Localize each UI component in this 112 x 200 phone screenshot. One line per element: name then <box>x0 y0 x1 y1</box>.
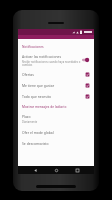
button[interactable]: Activar las notificaciones <box>81 57 90 63</box>
button[interactable]: Se descomovisto <box>18 138 94 149</box>
staticText: Todo que necesito <box>22 94 52 99</box>
staticText: Ofertas <box>22 72 34 77</box>
button[interactable]: Home <box>52 166 60 174</box>
button[interactable]: Activado <box>85 94 90 99</box>
button[interactable]: Activado <box>85 83 90 88</box>
staticText: Diariamente <box>22 120 38 124</box>
staticText: Mostrar mensajes de ladiario <box>22 105 67 109</box>
button[interactable]: Ofer el mode global <box>18 127 94 138</box>
staticText: Notificaciones <box>22 45 44 49</box>
button[interactable]: Ofertas <box>18 69 94 80</box>
button[interactable]: Recent apps <box>73 166 81 174</box>
staticText: Plazo <box>22 114 31 119</box>
button[interactable]: Activar las notificaciones <box>18 51 94 69</box>
button[interactable]: Me tiene que gustar <box>18 80 94 91</box>
staticText: Recibir notificaciones cuando haya noved… <box>22 60 81 66</box>
staticText: Me tiene que gustar <box>22 83 55 88</box>
button[interactable]: Activado <box>85 72 90 77</box>
button[interactable]: Plazo <box>18 111 94 127</box>
staticText: Se descomovisto <box>22 141 49 146</box>
staticText: Activar las notificaciones <box>22 54 62 59</box>
staticText: Ofer el mode global <box>22 130 54 135</box>
button[interactable]: Back <box>31 166 39 174</box>
button[interactable]: Todo que necesito <box>18 91 94 102</box>
